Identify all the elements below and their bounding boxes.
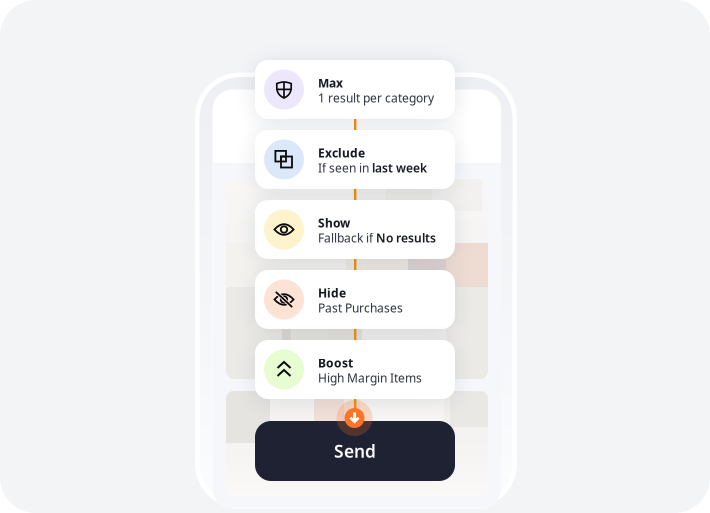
button[interactable]: Boost: [255, 340, 455, 399]
staticText: Fallback if: [318, 230, 376, 246]
button[interactable]: Exclude: [255, 130, 455, 189]
staticText: Past Purchases: [318, 300, 403, 316]
button[interactable]: Send: [255, 421, 455, 481]
staticText: 1 result per category: [318, 90, 434, 106]
button[interactable]: Show: [255, 200, 455, 259]
staticText: Show: [318, 215, 350, 231]
staticText: Send: [334, 439, 376, 462]
button[interactable]: Hide: [255, 270, 455, 329]
staticText: No results: [376, 230, 436, 246]
staticText: Max: [318, 75, 343, 91]
staticText: If seen in: [318, 160, 372, 176]
staticText: Exclude: [318, 145, 365, 161]
staticText: Hide: [318, 285, 346, 301]
staticText: High Margin Items: [318, 370, 422, 386]
staticText: last week: [372, 160, 427, 176]
staticText: Boost: [318, 355, 353, 371]
button[interactable]: Max: [255, 60, 455, 119]
